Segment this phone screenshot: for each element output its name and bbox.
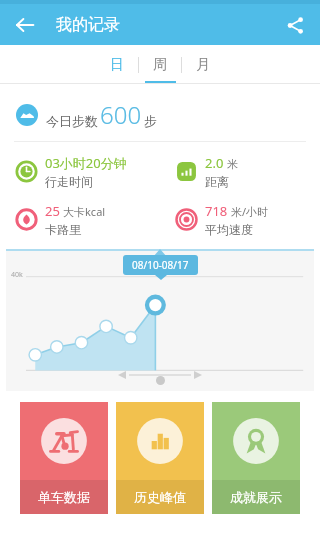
- staticText: 大卡kcal: [63, 204, 106, 219]
- button[interactable]: 25: [16, 202, 160, 237]
- button[interactable]: 历史峰值: [116, 402, 204, 514]
- staticText: 我的记录: [56, 15, 120, 35]
- staticText: 08/10-08/17: [132, 258, 189, 272]
- button[interactable]: Back: [8, 8, 42, 42]
- staticText: 600: [100, 98, 142, 131]
- staticText: 成就展示: [230, 489, 282, 505]
- staticText: 2.0: [205, 154, 224, 172]
- button[interactable]: Next: [191, 368, 205, 382]
- staticText: 卡路里: [45, 222, 81, 237]
- button[interactable]: 单车数据: [20, 402, 108, 514]
- staticText: 历史峰值: [134, 489, 186, 505]
- button[interactable]: Previous: [115, 368, 129, 382]
- staticText: 步: [144, 113, 157, 129]
- staticText: 40k: [11, 270, 23, 280]
- staticText: 米/小时: [231, 204, 269, 219]
- staticText: 日: [110, 56, 124, 74]
- staticText: 月: [196, 56, 210, 74]
- button[interactable]: 成就展示: [212, 402, 300, 514]
- button[interactable]: 日: [96, 45, 138, 84]
- staticText: 行走时间: [45, 174, 93, 189]
- staticText: 今日步数: [46, 113, 98, 129]
- staticText: 米: [227, 157, 238, 171]
- staticText: 距离: [205, 174, 229, 189]
- button[interactable]: Share: [278, 8, 312, 42]
- staticText: 周: [153, 56, 167, 74]
- staticText: 25: [45, 202, 60, 220]
- button[interactable]: Scrub: [156, 376, 165, 385]
- staticText: 718: [205, 202, 228, 220]
- button[interactable]: 718: [176, 202, 320, 237]
- staticText: 平均速度: [205, 222, 253, 237]
- button[interactable]: 月: [182, 45, 224, 84]
- staticText: 单车数据: [38, 489, 90, 505]
- button[interactable]: 03小时20分钟: [16, 154, 160, 189]
- button[interactable]: 周: [139, 45, 181, 84]
- button[interactable]: 2.0: [176, 154, 320, 189]
- staticText: 03小时20分钟: [45, 154, 127, 172]
- button[interactable]: 08/10-08/17: [132, 258, 189, 272]
